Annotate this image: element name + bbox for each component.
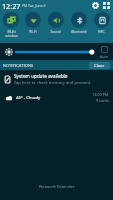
staticText: System update available: [14, 73, 68, 79]
staticText: 12:00 PM: [92, 92, 109, 97]
staticText: Bluetooth: [71, 29, 87, 34]
staticText: Multi window: [5, 29, 18, 38]
staticText: NFC: [98, 29, 105, 34]
button[interactable]: Brightness: [1, 44, 16, 59]
button[interactable]: Multi window: [0, 11, 22, 43]
staticText: PM: [22, 4, 27, 8]
button[interactable]: Settings: [90, 0, 101, 11]
button[interactable]: Clear: [89, 62, 110, 69]
staticText: 12:27: [2, 1, 21, 11]
staticText: Wi-Fi: [29, 29, 37, 34]
staticText: 9 cards: [96, 98, 109, 103]
button[interactable]: Edit quick settings: [101, 0, 112, 11]
button[interactable]: NFC: [90, 11, 113, 43]
button[interactable]: Bluetooth: [67, 11, 90, 43]
button[interactable]: Wi-Fi: [22, 11, 44, 43]
button[interactable]: Auto: [97, 45, 111, 59]
staticText: Clear: [94, 63, 105, 69]
staticText: Auto: [100, 54, 108, 59]
staticText: Tap here to check memory and proceed.: [14, 80, 92, 86]
staticText: NOTIFICATIONS: [3, 63, 34, 68]
staticText: Sound: [50, 29, 61, 34]
button[interactable]: 46° - Cloudy: [0, 88, 113, 106]
staticText: 46° - Cloudy: [16, 94, 41, 100]
button[interactable]: Sound: [44, 11, 67, 43]
staticText: Network Extender: [39, 184, 75, 190]
button[interactable]: [16, 46, 94, 58]
staticText: Tue, June 3: [28, 3, 46, 8]
button[interactable]: System update available: [0, 70, 113, 88]
